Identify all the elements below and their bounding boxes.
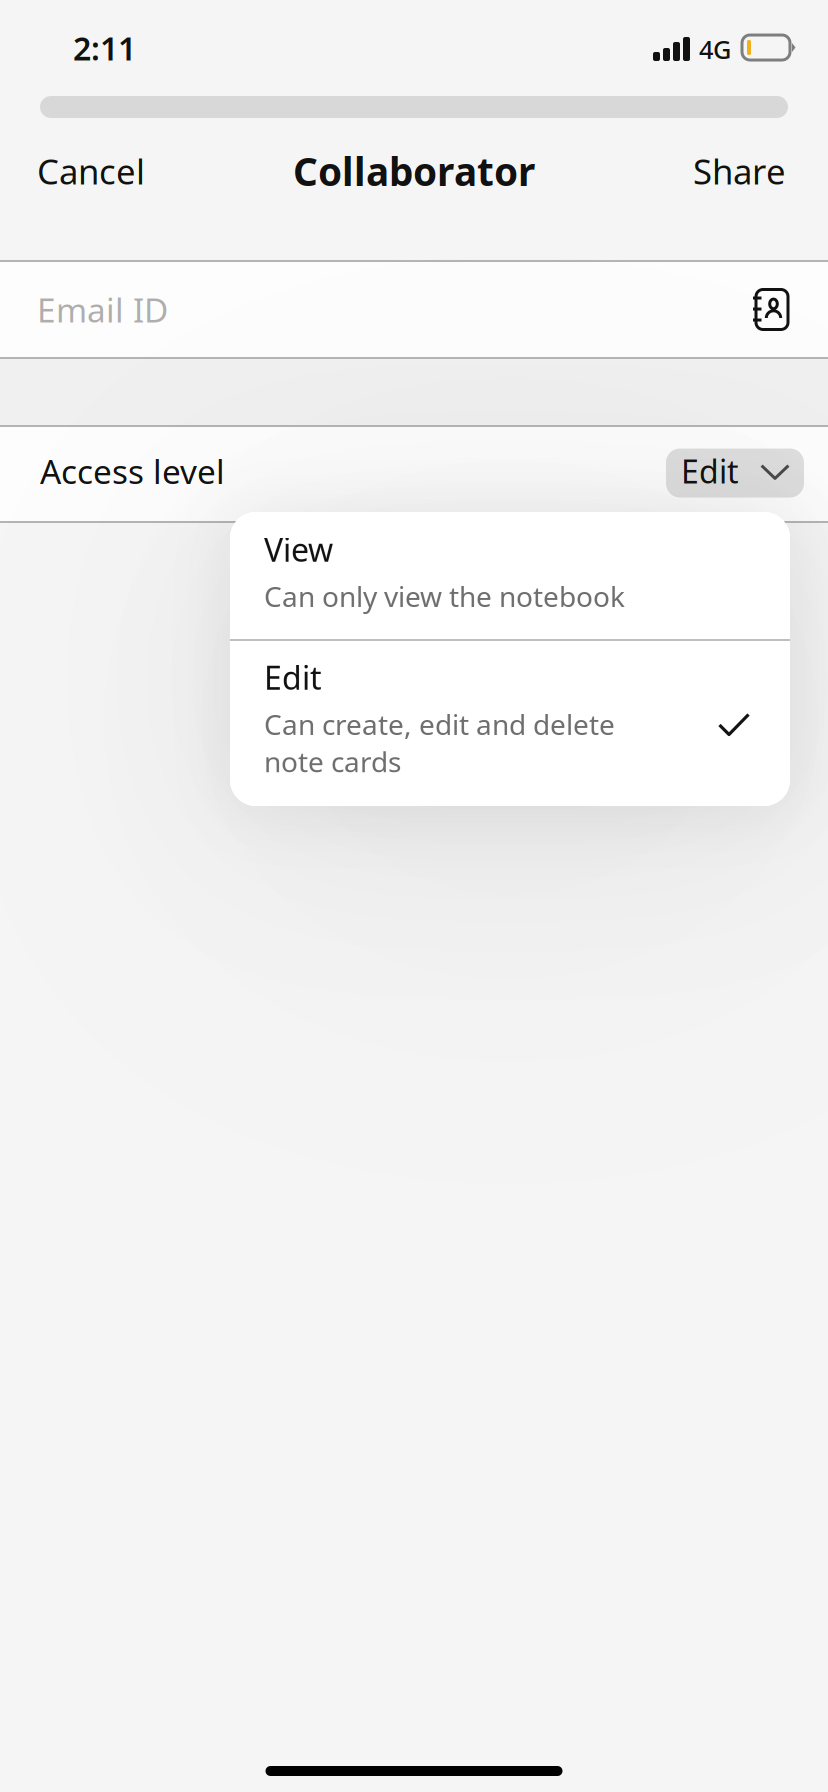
button[interactable]: Pick from contacts bbox=[735, 262, 809, 357]
staticText: 4G bbox=[699, 32, 731, 66]
staticText: Can only view the notebook bbox=[264, 577, 625, 615]
button[interactable]: Edit bbox=[666, 448, 804, 497]
staticText: 2:11 bbox=[73, 27, 136, 69]
staticText: Share bbox=[693, 148, 786, 194]
button[interactable]: Share bbox=[665, 125, 828, 217]
staticText: Cancel bbox=[37, 148, 145, 194]
staticText: Collaborator bbox=[293, 145, 535, 197]
staticText: Access level bbox=[40, 449, 225, 493]
staticText: Email ID bbox=[37, 287, 168, 332]
button[interactable]: Edit bbox=[230, 641, 790, 806]
button[interactable]: Cancel bbox=[0, 125, 173, 217]
staticText: Edit bbox=[681, 450, 739, 492]
staticText: Can create, edit and delete note cards bbox=[264, 705, 615, 780]
staticText: View bbox=[264, 528, 333, 570]
staticText: Edit bbox=[264, 656, 322, 698]
button[interactable]: View bbox=[230, 512, 790, 639]
